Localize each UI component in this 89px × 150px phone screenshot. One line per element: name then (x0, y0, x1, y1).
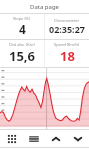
staticText: Data page (30, 3, 59, 11)
button[interactable]: Dist abs. (Km) (0, 40, 44, 67)
button[interactable]: Next page (67, 130, 89, 147)
button[interactable]: Slope (%) (0, 14, 44, 39)
button[interactable] (0, 68, 89, 129)
staticText: Dist abs. (Km) (9, 42, 35, 47)
staticText: Chronometer (54, 18, 80, 23)
button[interactable]: List view (23, 130, 45, 147)
button[interactable]: Speed (Km/h) (45, 40, 89, 67)
button[interactable]: Chronometer (45, 14, 89, 39)
staticText: 18 (60, 47, 75, 65)
button[interactable]: Grid view (0, 130, 23, 147)
button[interactable]: Previous page (45, 130, 67, 147)
staticText: 15,6 (9, 47, 36, 65)
staticText: 4 (19, 21, 26, 37)
staticText: 02:35:27 (49, 23, 85, 35)
staticText: Speed (Km/h) (54, 42, 80, 47)
staticText: Slope (%) (13, 16, 31, 21)
